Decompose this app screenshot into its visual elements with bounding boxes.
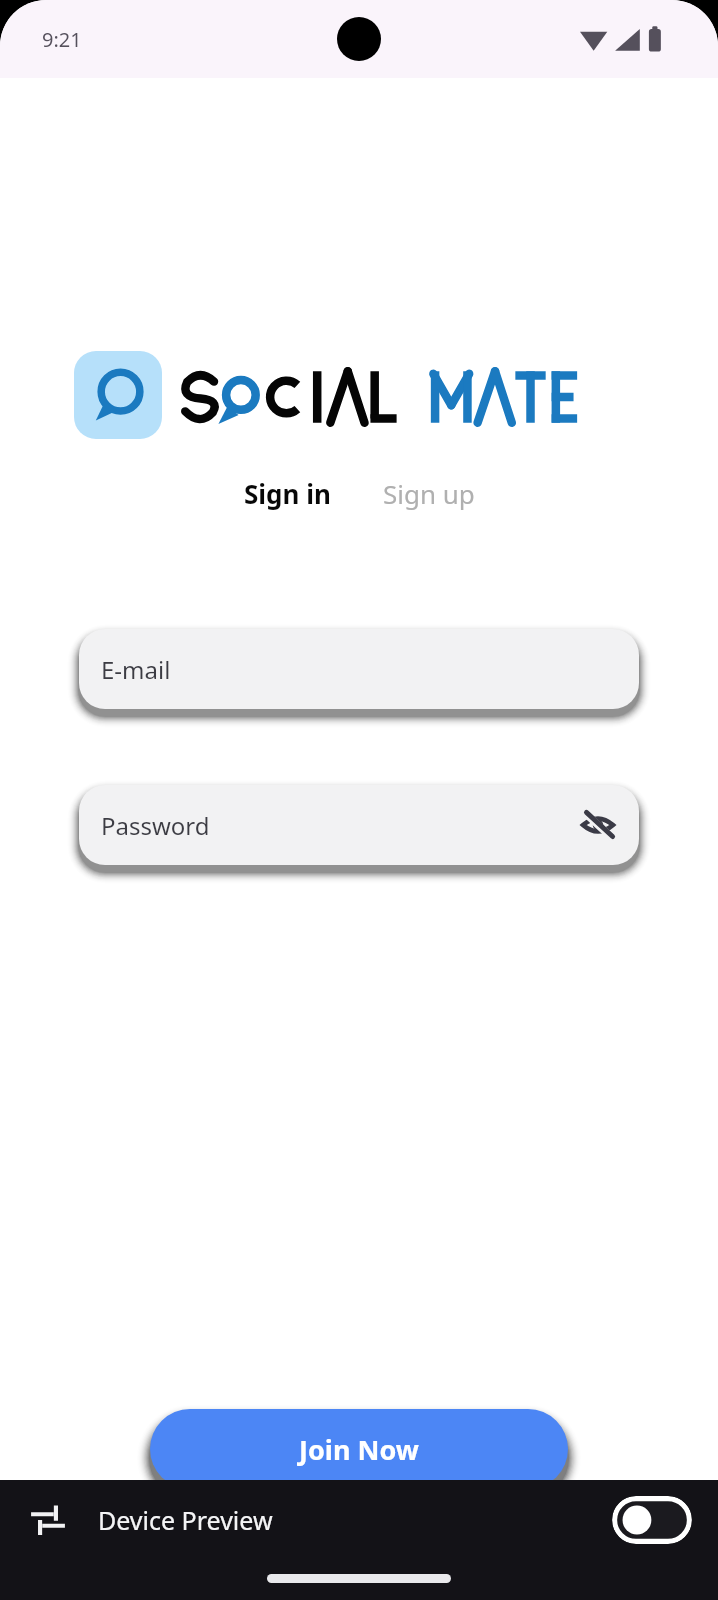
- button[interactable]: Toggle device preview: [612, 1496, 692, 1544]
- button[interactable]: Join Now: [150, 1409, 568, 1489]
- staticText: Join Now: [299, 1431, 419, 1468]
- button[interactable]: Preview settings: [26, 1498, 70, 1542]
- staticText: Device Preview: [98, 1503, 273, 1537]
- staticText: E-mail: [101, 653, 171, 686]
- staticText: Password: [101, 809, 210, 842]
- button[interactable]: Sign in: [234, 470, 341, 517]
- button[interactable]: Password: [79, 785, 639, 865]
- button[interactable]: Sign up: [373, 470, 485, 517]
- button[interactable]: E-mail: [79, 629, 639, 709]
- staticText: Sign in: [244, 476, 331, 511]
- staticText: 9:21: [42, 26, 82, 53]
- button[interactable]: Show password: [575, 802, 621, 848]
- staticText: Sign up: [383, 476, 475, 511]
